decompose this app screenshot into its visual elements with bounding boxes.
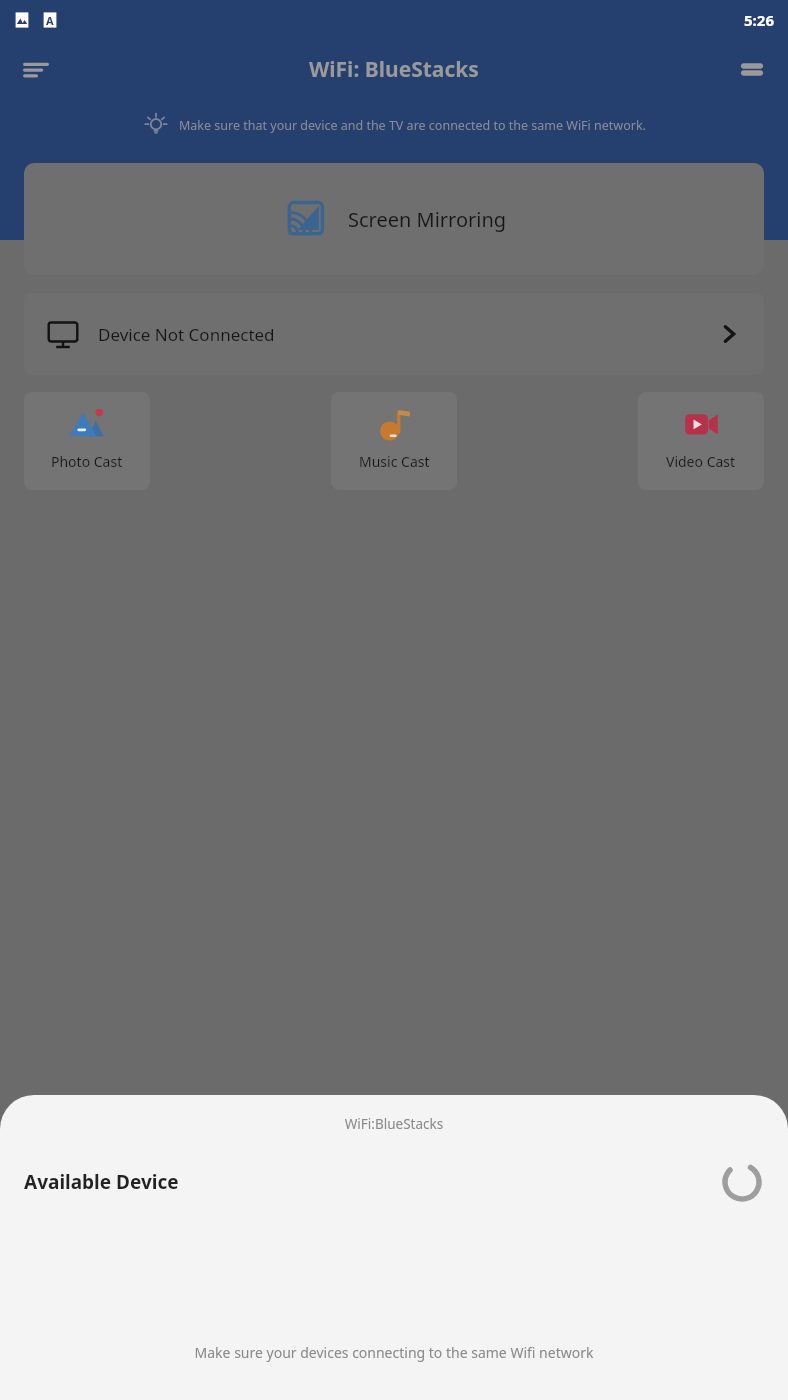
button[interactable]: Photo Cast: [24, 392, 150, 490]
button[interactable]: Screen Mirroring: [24, 163, 764, 275]
staticText: A: [46, 13, 54, 28]
button[interactable]: More options: [730, 47, 774, 91]
button[interactable]: Music Cast: [331, 392, 457, 490]
staticText: Photo Cast: [51, 452, 123, 471]
staticText: Music Cast: [359, 452, 430, 471]
button[interactable]: Device Not Connected: [24, 293, 764, 375]
staticText: Available Device: [24, 1169, 179, 1195]
staticText: Make sure that your device and the TV ar…: [179, 117, 646, 134]
staticText: WiFi: BlueStacks: [309, 55, 479, 84]
button[interactable]: Video Cast: [638, 392, 764, 490]
staticText: Device Not Connected: [98, 323, 275, 346]
staticText: 5:26: [744, 10, 774, 30]
staticText: WiFi:BlueStacks: [0, 1115, 788, 1133]
staticText: Screen Mirroring: [348, 206, 507, 233]
staticText: Video Cast: [666, 452, 736, 471]
staticText: Make sure your devices connecting to the…: [0, 1343, 788, 1362]
button[interactable]: Menu: [14, 47, 58, 91]
